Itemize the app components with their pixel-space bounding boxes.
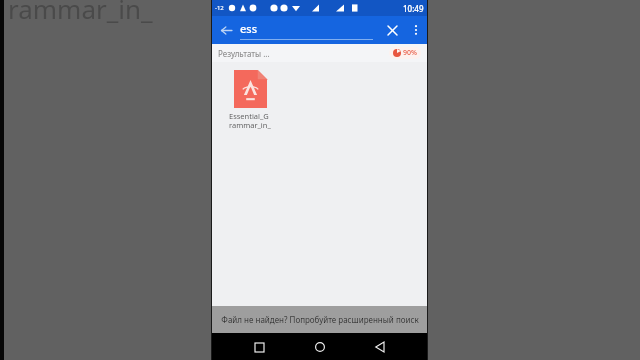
staticText: Файл не найден? Попробуйте расширенный п… bbox=[221, 314, 419, 325]
button[interactable]: Back bbox=[367, 334, 393, 360]
button[interactable]: Back bbox=[212, 16, 240, 44]
staticText: Результаты ... bbox=[218, 48, 270, 59]
staticText: rammar_in_ bbox=[8, 0, 153, 26]
staticText: 90% bbox=[403, 48, 417, 58]
staticText: -12 bbox=[215, 4, 224, 12]
button[interactable]: Clear bbox=[379, 17, 405, 43]
button[interactable]: Recent apps bbox=[246, 334, 272, 360]
button[interactable]: Essential_G rammar_in_ bbox=[221, 68, 279, 132]
button[interactable]: Home bbox=[307, 334, 333, 360]
button[interactable]: Файл не найден? Попробуйте расширенный п… bbox=[212, 306, 427, 333]
staticText: 10:49 bbox=[403, 3, 424, 14]
staticText: Essential_G rammar_in_ bbox=[229, 111, 271, 130]
staticText: ess bbox=[240, 21, 258, 36]
button[interactable]: More options bbox=[405, 19, 427, 41]
button[interactable]: 90% bbox=[389, 47, 421, 59]
